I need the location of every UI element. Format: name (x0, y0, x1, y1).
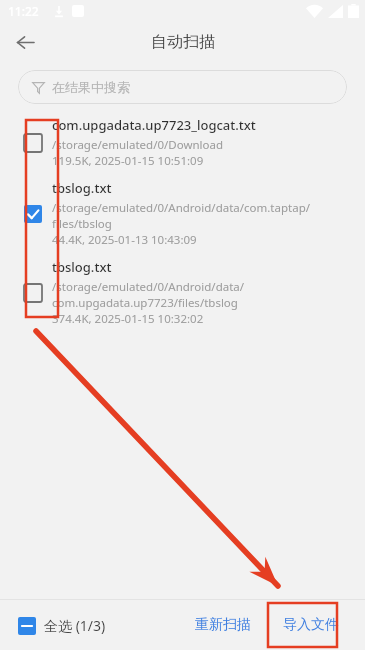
staticText: 导入文件 (283, 616, 339, 634)
staticText: 374.4K, 2025-01-15 10:32:02 (52, 311, 204, 327)
staticText: 在结果中搜索 (52, 79, 130, 95)
button[interactable]: Select file (0, 252, 365, 331)
staticText: tbslog.txt (52, 179, 112, 197)
staticText: /storage/emulated/0/Android/data/com.tap… (52, 200, 310, 216)
button[interactable]: Back (10, 27, 40, 57)
button[interactable]: Select file (24, 205, 42, 223)
button[interactable]: 重新扫描 (187, 610, 259, 640)
staticText: files/tbslog (52, 216, 112, 232)
staticText: 11:22 (8, 3, 39, 19)
staticText: 自动扫描 (151, 32, 215, 52)
staticText: 重新扫描 (195, 616, 251, 634)
button[interactable]: Select file (0, 110, 365, 173)
staticText: /storage/emulated/0/Android/data/ (52, 279, 245, 295)
staticText: /storage/emulated/0/Download (52, 137, 224, 153)
button[interactable]: 在结果中搜索 (18, 70, 347, 104)
staticText: 119.5K, 2025-01-15 10:51:09 (52, 153, 204, 169)
staticText: 44.4K, 2025-01-13 10:43:09 (52, 232, 197, 248)
button[interactable]: Select file (24, 134, 42, 152)
button[interactable]: 全选 (1/3) (18, 616, 112, 635)
staticText: tbslog.txt (52, 258, 112, 276)
button[interactable]: Select file (0, 173, 365, 252)
staticText: com.upgadata.up7723_logcat.txt (52, 116, 256, 134)
button[interactable]: Select file (24, 284, 42, 302)
staticText: 全选 (1/3) (44, 616, 106, 635)
staticText: com.upgadata.up7723/files/tbslog (52, 295, 238, 311)
button[interactable]: 导入文件 (275, 610, 347, 640)
